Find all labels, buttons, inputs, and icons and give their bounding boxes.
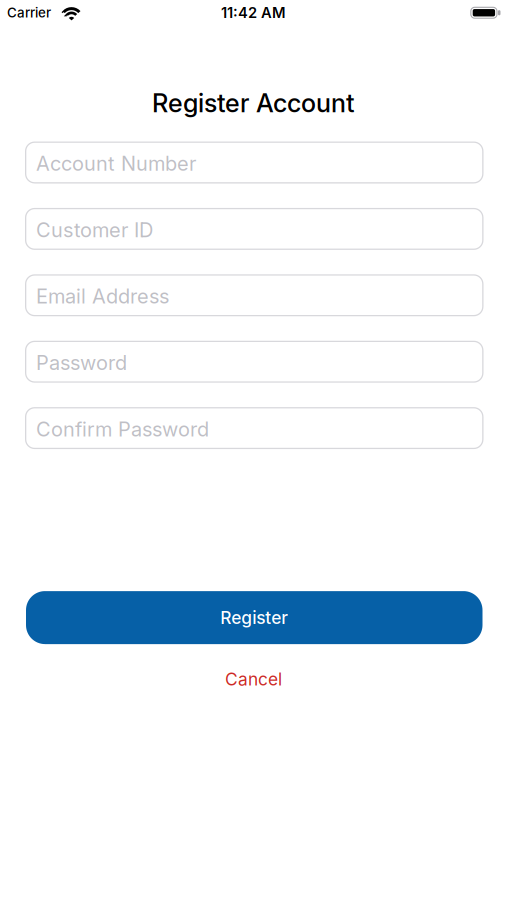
textField[interactable]: Confirm Password <box>25 407 483 449</box>
staticText: Email Address <box>36 284 169 308</box>
staticText: Confirm Password <box>36 417 209 441</box>
textField[interactable]: Password <box>25 341 483 383</box>
staticText: 11:42 AM <box>221 4 286 21</box>
textField[interactable]: Account Number <box>25 141 483 183</box>
button[interactable]: Register <box>26 591 482 644</box>
button[interactable]: Cancel <box>225 668 282 690</box>
staticText: Register <box>220 607 288 628</box>
staticText: Cancel <box>225 669 282 689</box>
textField[interactable]: Email Address <box>25 274 483 316</box>
staticText: Register Account <box>152 88 355 118</box>
staticText: Account Number <box>36 152 196 175</box>
staticText: Password <box>36 351 127 374</box>
staticText: Customer ID <box>36 218 153 242</box>
textField[interactable]: Customer ID <box>25 208 483 250</box>
staticText: Carrier <box>7 5 51 21</box>
